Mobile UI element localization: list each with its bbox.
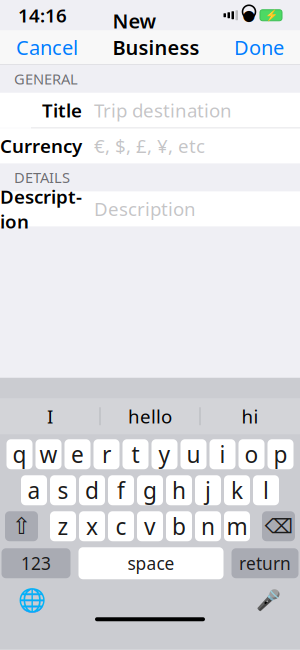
button[interactable]: Switch keyboard [12, 585, 52, 615]
button[interactable]: 123 [1, 548, 70, 578]
staticText: 14:16 [18, 3, 67, 28]
button[interactable]: Currency [0, 128, 300, 163]
staticText: o [244, 439, 258, 469]
button[interactable]: c [108, 511, 134, 541]
button[interactable]: g [137, 475, 163, 505]
staticText: Currency [0, 133, 82, 158]
staticText: GENERAL [14, 69, 78, 88]
button[interactable]: space [78, 547, 223, 579]
button[interactable]: o [238, 439, 264, 469]
staticText: z [57, 511, 68, 541]
staticText: ⚡ [264, 9, 277, 21]
staticText: k [231, 475, 243, 505]
button[interactable]: e [64, 439, 90, 469]
button[interactable]: n [195, 511, 221, 541]
staticText: 🎤 [255, 589, 280, 612]
staticText: c [115, 511, 126, 541]
staticText: €, $, £, ¥, etc [94, 133, 205, 158]
button[interactable]: w [35, 439, 61, 469]
button[interactable]: Title [0, 93, 300, 128]
button[interactable]: Description [0, 191, 300, 226]
staticText: hi [241, 404, 258, 429]
button[interactable]: s [50, 475, 76, 505]
button[interactable]: x [79, 511, 105, 541]
staticText: return [239, 552, 291, 575]
button[interactable]: k [224, 475, 250, 505]
button[interactable]: Dictate [248, 585, 288, 615]
button[interactable]: Cancel [6, 30, 88, 64]
staticText: Done [234, 34, 284, 61]
staticText: r [102, 439, 111, 469]
staticText: b [172, 511, 186, 541]
button[interactable]: d [79, 475, 105, 505]
staticText: j [205, 475, 211, 505]
button[interactable]: i [209, 439, 235, 469]
button[interactable]: r [93, 439, 119, 469]
staticText: hello [128, 404, 172, 429]
staticText: i [219, 439, 225, 469]
button[interactable]: f [108, 475, 134, 505]
button[interactable]: z [50, 511, 76, 541]
button[interactable]: y [151, 439, 177, 469]
staticText: 123 [21, 552, 51, 575]
staticText: Title [42, 98, 82, 123]
staticText: s [57, 475, 68, 505]
button[interactable]: Shift [5, 511, 38, 541]
button[interactable]: b [166, 511, 192, 541]
staticText: u [186, 439, 200, 469]
staticText: DETAILS [14, 168, 70, 187]
staticText: x [86, 511, 98, 541]
staticText: d [85, 475, 99, 505]
staticText: ⌫ [264, 515, 292, 538]
button[interactable]: Done [224, 30, 294, 64]
staticText: m [226, 511, 247, 541]
staticText: e [71, 439, 84, 469]
staticText: n [201, 511, 215, 541]
staticText: g [143, 475, 157, 505]
staticText: 🌐 [18, 587, 46, 613]
staticText: ⇧ [12, 513, 31, 539]
button[interactable]: p [267, 439, 293, 469]
button[interactable]: u [180, 439, 206, 469]
staticText: Cancel [16, 34, 78, 61]
staticText: q [12, 439, 26, 469]
staticText: y [158, 439, 170, 469]
staticText: Trip destination [94, 98, 232, 123]
staticText: Description [0, 184, 82, 234]
staticText: I [47, 404, 53, 429]
staticText: New Business Trip [112, 7, 199, 87]
staticText: a [27, 475, 40, 505]
button[interactable]: m [224, 511, 250, 541]
button[interactable]: a [21, 475, 47, 505]
button[interactable]: l [253, 475, 279, 505]
staticText: l [263, 475, 269, 505]
staticText: f [117, 475, 125, 505]
button[interactable]: t [122, 439, 148, 469]
button[interactable]: I [0, 398, 99, 434]
staticText: p [273, 439, 287, 469]
staticText: ● [242, 7, 255, 23]
button[interactable]: return [231, 548, 298, 578]
button[interactable]: v [137, 511, 163, 541]
staticText: w [39, 439, 57, 469]
staticText: h [172, 475, 186, 505]
button[interactable]: Delete [262, 511, 295, 541]
button[interactable]: q [6, 439, 32, 469]
button[interactable]: hi [200, 398, 299, 434]
button[interactable]: j [195, 475, 221, 505]
staticText: v [144, 511, 156, 541]
staticText: space [127, 552, 174, 575]
button[interactable]: h [166, 475, 192, 505]
staticText: t [131, 439, 139, 469]
staticText: Description [94, 196, 196, 221]
button[interactable]: hello [100, 398, 199, 434]
